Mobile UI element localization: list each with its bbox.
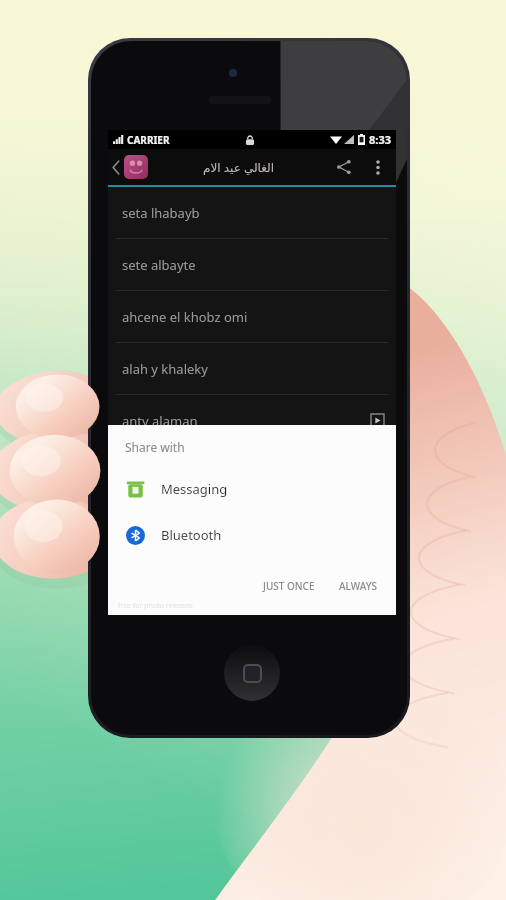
- staticText: JUST ONCE: [263, 579, 315, 593]
- button[interactable]: More options: [362, 151, 394, 183]
- staticText: sete albayte: [122, 256, 196, 274]
- staticText: ahcene el khobz omi: [122, 308, 248, 326]
- staticText: CARRIER: [127, 133, 170, 147]
- staticText: alah y khaleky: [122, 360, 208, 378]
- staticText: anty alaman: [122, 412, 198, 430]
- button[interactable]: Share: [326, 149, 362, 185]
- button[interactable]: anty alaman: [108, 395, 396, 446]
- staticText: Bluetooth: [161, 526, 222, 544]
- button[interactable]: JUST ONCE: [254, 573, 324, 599]
- staticText: ALWAYS: [339, 579, 377, 593]
- button[interactable]: ahcene el khobz omi: [108, 291, 396, 342]
- button[interactable]: Messaging: [108, 471, 396, 507]
- button[interactable]: seta lhabayb: [108, 187, 396, 238]
- staticText: seta lhabayb: [122, 204, 200, 222]
- staticText: الغالي عيد الام: [202, 159, 274, 175]
- staticText: 8:33: [369, 132, 391, 147]
- button[interactable]: ALWAYS: [330, 573, 386, 599]
- staticText: Share with: [125, 439, 185, 455]
- button[interactable]: sete albayte: [108, 239, 396, 290]
- button[interactable]: alah y khaleky: [108, 343, 396, 394]
- staticText: free for photo releases: [118, 601, 193, 611]
- button[interactable]: Navigate up: [108, 155, 150, 179]
- other: Home: [224, 645, 280, 701]
- button[interactable]: Bluetooth: [108, 517, 396, 553]
- staticText: Messaging: [161, 480, 228, 498]
